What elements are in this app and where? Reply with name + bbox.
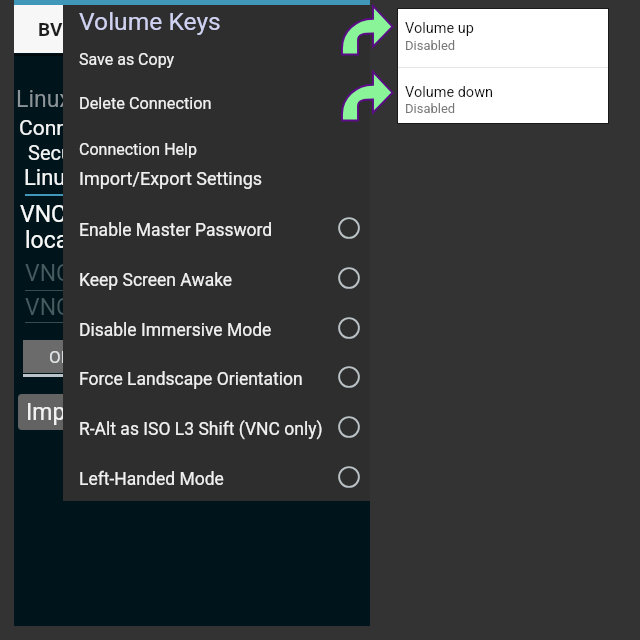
staticText: VNC Server	[20, 201, 137, 228]
button[interactable]: Volume Keys	[63, 0, 370, 40]
button[interactable]: Delete Connection	[63, 84, 370, 118]
staticText: Secure Shell (SSH)	[28, 141, 195, 164]
button[interactable]: Volume up	[398, 14, 608, 48]
staticText: Connection Name	[19, 116, 187, 141]
staticText: Import/Export Settings	[26, 399, 260, 426]
button[interactable]: Import/Export Settings	[63, 158, 370, 194]
staticText: Linux (SSH) - Secure Shell	[16, 86, 280, 113]
button[interactable]: R-Alt as ISO L3 Shift (VNC only)	[63, 408, 370, 448]
staticText: Disabled	[405, 38, 456, 53]
staticText: Volume down	[405, 84, 494, 101]
staticText: Left-Handed Mode	[79, 469, 224, 490]
staticText: VNC Username	[25, 294, 182, 321]
staticText: Delete Connection	[79, 94, 212, 113]
button[interactable]: Force Landscape Orientation	[63, 358, 370, 398]
staticText: Linux (SSH)	[24, 165, 139, 191]
staticText: Import/Export Settings	[79, 168, 263, 189]
staticText: R-Alt as ISO L3 Shift (VNC only)	[79, 419, 323, 440]
staticText: localhost	[25, 227, 120, 254]
staticText: Volume up	[405, 20, 474, 37]
staticText: Keep Screen Awake	[79, 270, 233, 291]
staticText: Disabled	[405, 101, 456, 116]
button[interactable]: OK	[23, 340, 363, 373]
button[interactable]: Volume down	[398, 78, 608, 112]
staticText: Enable Master Password	[79, 220, 273, 241]
button[interactable]: Volume up shortcut	[341, 5, 393, 55]
staticText: OK	[49, 347, 72, 367]
staticText: Connection Help	[79, 140, 197, 159]
staticText: Volume Keys	[79, 7, 221, 36]
button[interactable]: Import/Export Settings	[18, 394, 358, 430]
staticText: VNC Password	[25, 260, 179, 287]
staticText: Force Landscape Orientation	[79, 369, 303, 390]
button[interactable]: BVNC : bVNC Viewer	[14, 5, 370, 53]
button[interactable]: Enable Master Password	[63, 209, 370, 249]
button[interactable]: Volume down shortcut	[341, 71, 393, 121]
button[interactable]: Disable Immersive Mode	[63, 309, 370, 349]
button[interactable]: Keep Screen Awake	[63, 259, 370, 299]
button[interactable]: Connection Help	[63, 130, 370, 164]
staticText: Disable Immersive Mode	[79, 320, 272, 341]
staticText: Save as Copy	[79, 50, 175, 69]
button[interactable]: Save as Copy	[63, 40, 370, 74]
staticText: BVNC : bVNC Viewer	[38, 18, 216, 40]
button[interactable]: Left-Handed Mode	[63, 458, 370, 498]
